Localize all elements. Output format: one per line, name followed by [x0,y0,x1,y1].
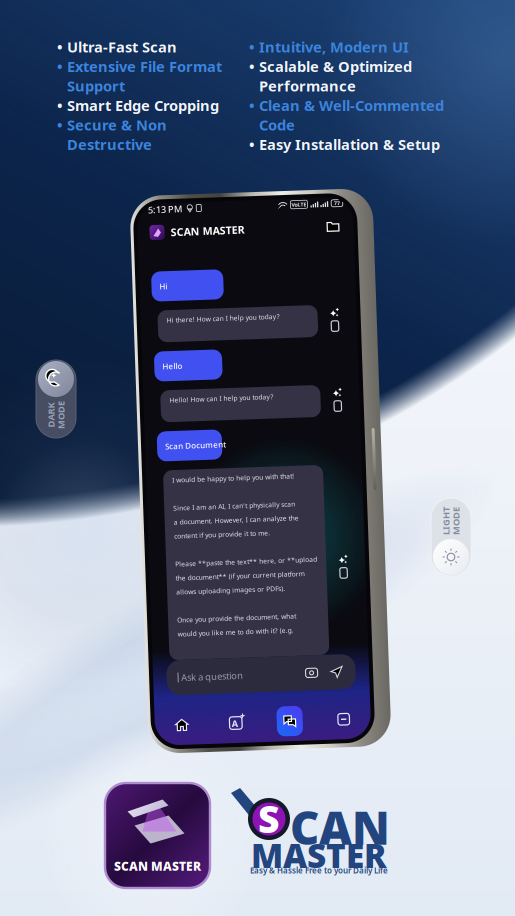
staticText: SCAN MASTER [114,858,201,874]
staticText: Once you provide the document, what [172,613,291,621]
staticText: • [57,95,63,115]
button[interactable]: Documents [308,698,362,746]
staticText: Performance [259,76,356,95]
staticText: • [57,115,63,134]
staticText: LIGHT [432,515,460,527]
button[interactable]: Scan text [200,698,254,746]
button[interactable]: Home [146,698,200,746]
staticText: Hi [166,278,174,288]
staticText: Scan Document [166,438,227,448]
staticText: • [249,37,255,56]
staticText: MODE [47,409,75,421]
button[interactable]: Files [332,219,351,238]
staticText: Scalable & Optimized [259,56,412,76]
staticText: DARK [38,409,63,421]
staticText: Since I am an AI, I can't physically sca… [172,501,294,509]
staticText: A [223,716,229,729]
staticText: Ask a question [174,668,236,681]
button[interactable]: Camera [296,667,312,682]
staticText: • [249,134,255,154]
staticText: CAN [290,797,390,857]
staticText: Ultra-Fast Scan [67,37,177,56]
staticText: Clean & Well-Commented [259,95,444,115]
staticText: • [57,56,63,76]
staticText: • [249,56,255,76]
staticText: Easy & Hassle Free to your Daily Life [250,865,388,876]
staticText: MODE [442,515,470,527]
button[interactable]: Chat [254,698,308,746]
staticText: Extensive File Format [67,56,222,76]
button[interactable]: Send [321,666,337,682]
staticText: Hi there! How can I help you today? [172,313,285,321]
staticText: SCAN MASTER [179,222,253,236]
staticText: • [57,37,63,56]
staticText: Please **paste the text** here, or **upl… [172,557,314,565]
staticText: allows uploading images or PDFs). [172,585,281,593]
staticText: MASTER [251,833,387,877]
staticText: I would be happy to help you with that! [172,473,294,481]
staticText: 77 [343,202,349,210]
staticText: a document. However, I can analyze the [172,515,297,523]
staticText: S [258,794,280,843]
staticText: Destructive [67,134,152,154]
staticText: Support [67,76,125,95]
staticText: • [249,95,255,115]
button[interactable]: Dark Mode [36,360,76,438]
staticText: Secure & Non [67,115,167,134]
staticText: Smart Edge Cropping [67,95,219,115]
staticText: Hello [166,358,186,368]
staticText: Easy Installation & Setup [259,134,440,154]
staticText: the document** (if your current platform [172,571,301,579]
staticText: VoLTE [301,202,316,210]
staticText: would you like me to do with it? (e.g. [172,627,288,635]
staticText: content if you provide it to me. [172,529,268,537]
button[interactable]: Light Mode [431,498,471,576]
staticText: Code [259,115,295,134]
staticText: Hello! How can I help you today? [172,393,276,401]
staticText: 5:13 PM [157,200,192,212]
staticText: Intuitive, Modern UI [259,37,409,56]
